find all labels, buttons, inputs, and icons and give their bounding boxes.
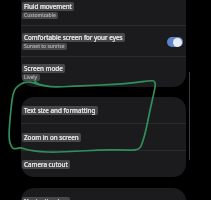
button[interactable]: Navigation bar (21, 188, 186, 200)
button[interactable]: Screen mode (21, 57, 186, 87)
staticText: Lively (24, 74, 38, 81)
button[interactable]: Comfortable screen for your eyes (21, 26, 186, 57)
button[interactable]: Fluid movement (21, 0, 186, 26)
button[interactable]: Camera cutout (21, 151, 186, 177)
staticText: Customizable (24, 12, 56, 19)
staticText: Comfortable screen for your eyes (24, 33, 123, 42)
button[interactable]: Eye comfort shield toggle (167, 37, 183, 47)
button[interactable]: Text size and formatting (21, 97, 186, 124)
button[interactable]: Zoom in on screen (21, 124, 186, 151)
staticText: Camera cutout (24, 160, 68, 169)
staticText: Navigation bar (24, 197, 68, 200)
staticText: Screen mode (24, 64, 63, 73)
staticText: Zoom in on screen (24, 133, 79, 142)
staticText: Sunset to sunrise (24, 43, 65, 50)
staticText: Fluid movement (24, 2, 72, 11)
staticText: Text size and formatting (24, 106, 96, 115)
